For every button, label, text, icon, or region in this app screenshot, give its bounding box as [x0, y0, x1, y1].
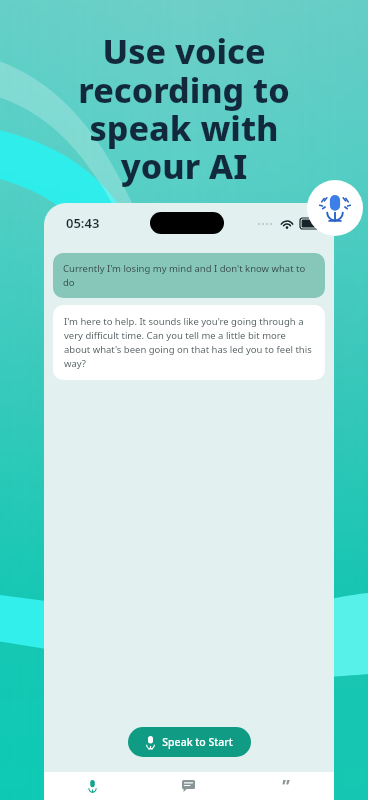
staticText: 05:43: [66, 214, 100, 232]
button[interactable]: Speak to Start: [128, 727, 251, 757]
staticText: Use voice recording to speak with your A…: [78, 28, 290, 189]
staticText: I'm here to help. It sounds like you're …: [64, 315, 314, 370]
button[interactable]: Currently I'm losing my mind and I don't…: [53, 253, 325, 298]
button[interactable]: Quotes: [237, 772, 334, 800]
button[interactable]: Voice recording: [44, 772, 140, 800]
button[interactable]: I'm here to help. It sounds like you're …: [53, 305, 325, 380]
staticText: ”: [282, 775, 290, 798]
staticText: Speak to Start: [162, 735, 233, 749]
button[interactable]: Voice recording badge: [307, 180, 363, 236]
button[interactable]: Chat: [140, 772, 237, 800]
staticText: Currently I'm losing my mind and I don't…: [63, 262, 315, 289]
